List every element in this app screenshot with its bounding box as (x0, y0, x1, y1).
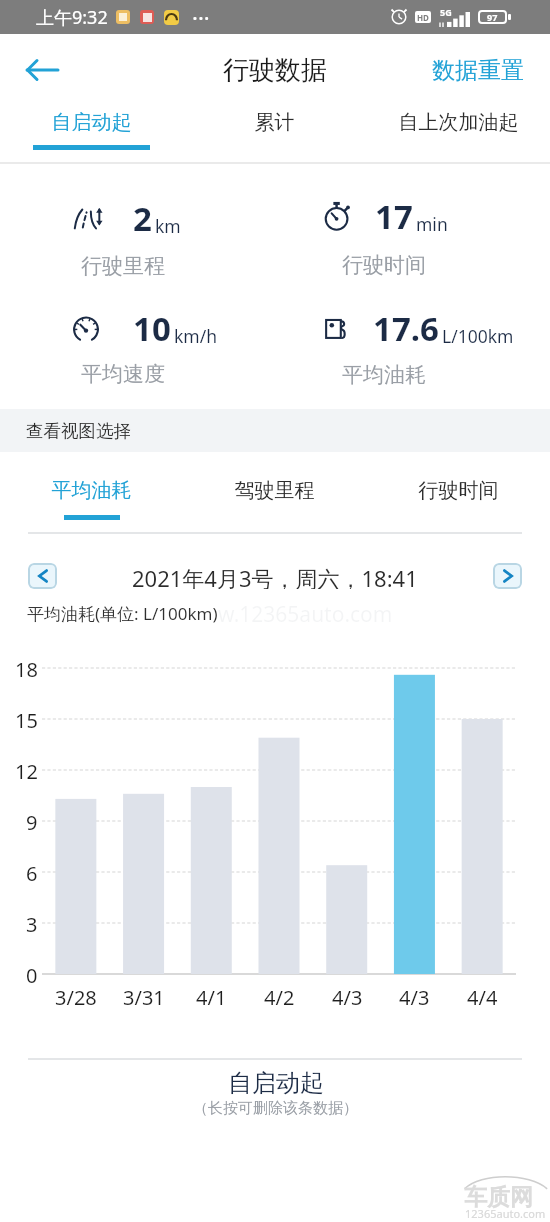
staticText: 2 (133, 196, 152, 241)
staticText: 17.6 (373, 306, 439, 351)
staticText: 5G (440, 6, 452, 18)
staticText: 4/3 (332, 984, 363, 1008)
staticText: 平均油耗(单位: L/100km) (27, 602, 218, 625)
staticText: 自上次加油起 (367, 110, 550, 135)
button[interactable]: 自启动起 (0, 1068, 550, 1130)
staticText: km/h (174, 324, 218, 348)
staticText: 数据重置 (432, 56, 524, 85)
staticText: 行驶数据 (223, 54, 327, 87)
button[interactable]: 行驶时间 (367, 465, 550, 528)
staticText: 3 (26, 911, 38, 935)
button[interactable]: 自上次加油起 (367, 97, 550, 158)
staticText: 10 (133, 306, 171, 351)
button[interactable]: 自启动起 (0, 97, 183, 158)
staticText: 97 (487, 11, 498, 23)
staticText: 18 (15, 656, 38, 680)
button[interactable]: 平均油耗 (0, 465, 183, 528)
staticText: 4/1 (196, 984, 227, 1008)
staticText: 15 (15, 707, 38, 731)
staticText: 行驶里程 (81, 253, 165, 279)
button[interactable]: 驾驶里程 (183, 465, 366, 528)
staticText: 平均油耗 (342, 362, 426, 388)
staticText: 3/28 (55, 984, 97, 1008)
staticText: ··· (192, 2, 210, 32)
staticText: 行驶时间 (367, 478, 550, 503)
staticText: 车质网 (464, 1183, 533, 1212)
staticText: 6 (26, 860, 38, 884)
button[interactable]: 数据重置 (406, 42, 550, 99)
staticText: 驾驶里程 (183, 478, 366, 503)
staticText: 自启动起 (228, 1068, 324, 1097)
staticText: 2021年4月3号，周六，18:41 (132, 563, 418, 589)
staticText: L/100km (442, 324, 514, 348)
staticText: 0 (26, 962, 38, 986)
staticText: （长按可删除该条数据） (193, 1099, 358, 1118)
staticText: 查看视图选择 (26, 420, 131, 442)
staticText: 上午9:32 (36, 5, 108, 30)
staticText: 12365auto.com (465, 1206, 546, 1221)
staticText: 平均速度 (81, 361, 165, 387)
staticText: 3/31 (123, 984, 165, 1008)
button[interactable]: Back (14, 42, 70, 98)
button[interactable]: Next period (493, 563, 522, 589)
staticText: 9 (26, 809, 38, 833)
staticText: 17 (375, 194, 413, 239)
staticText: 自启动起 (0, 110, 183, 135)
button[interactable]: Previous period (28, 563, 57, 589)
staticText: 行驶时间 (342, 252, 426, 278)
staticText: 平均油耗 (0, 478, 183, 503)
staticText: km (155, 214, 181, 238)
staticText: 4/4 (467, 984, 498, 1008)
staticText: w.12365auto.com (218, 600, 393, 629)
staticText: 4/2 (264, 984, 295, 1008)
button[interactable]: 累计 (183, 97, 366, 158)
staticText: 12 (15, 758, 38, 782)
staticText: 累计 (183, 110, 366, 135)
staticText: min (416, 212, 448, 236)
staticText: HD (417, 12, 429, 23)
staticText: 4/3 (399, 984, 430, 1008)
